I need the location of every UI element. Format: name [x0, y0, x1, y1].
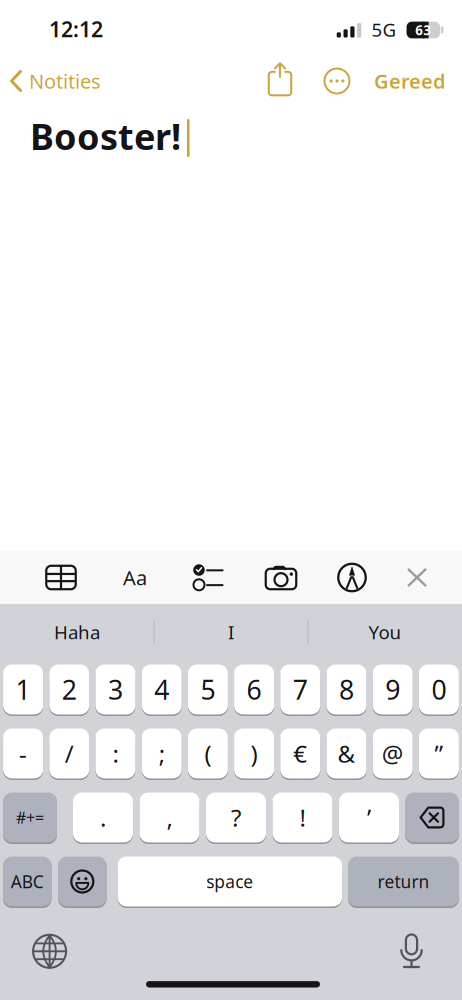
button[interactable]: 2 [49, 663, 89, 715]
staticText: : [112, 738, 118, 769]
staticText: 9 [385, 672, 400, 707]
button[interactable]: @ [373, 727, 413, 779]
button[interactable]: ) [234, 727, 274, 779]
staticText: / [65, 738, 74, 769]
button[interactable]: ? [206, 791, 266, 843]
staticText: & [337, 738, 355, 769]
staticText: ’ [367, 802, 371, 833]
button[interactable]: Next keyboard [22, 923, 78, 979]
staticText: ) [251, 738, 258, 769]
button[interactable]: More [317, 59, 357, 103]
button[interactable]: € [280, 727, 320, 779]
button[interactable]: ; [142, 727, 182, 779]
button[interactable]: Checklist [183, 551, 233, 604]
button[interactable]: ABC [3, 855, 52, 907]
button[interactable]: 1 [3, 663, 43, 715]
button[interactable]: Notities [10, 59, 180, 103]
button[interactable]: Dismiss keyboard [395, 551, 439, 604]
button[interactable]: . [73, 791, 133, 843]
staticText: 1 [16, 672, 31, 707]
button[interactable]: 6 [234, 663, 274, 715]
staticText: ; [159, 738, 165, 769]
button[interactable]: - [3, 727, 43, 779]
staticText: 4 [154, 672, 169, 707]
button[interactable]: ” [419, 727, 459, 779]
staticText: . [100, 802, 106, 833]
staticText: ABC [11, 870, 44, 893]
button[interactable]: 0 [419, 663, 459, 715]
staticText: , [166, 802, 172, 833]
staticText: 8 [339, 672, 354, 707]
staticText: 12:12 [49, 15, 103, 43]
button[interactable]: Formatting [110, 551, 160, 604]
button[interactable]: & [326, 727, 366, 779]
button[interactable]: I [156, 609, 306, 655]
button[interactable]: 8 [326, 663, 366, 715]
staticText: @ [382, 738, 404, 769]
staticText: Booster! [30, 112, 181, 160]
staticText: 5 [200, 672, 215, 707]
button[interactable]: 5 [188, 663, 228, 715]
staticText: Notities [29, 68, 101, 94]
button[interactable]: / [49, 727, 89, 779]
staticText: ? [231, 802, 241, 833]
staticText: 3 [108, 672, 123, 707]
button[interactable]: ’ [339, 791, 399, 843]
button[interactable]: Share [260, 57, 300, 101]
staticText: ! [299, 802, 305, 833]
button[interactable]: Dictate [383, 921, 439, 977]
button[interactable]: #+= [3, 791, 57, 843]
staticText: Haha [54, 620, 100, 644]
button[interactable]: Delete [405, 791, 459, 843]
button[interactable]: Markup [327, 551, 377, 604]
button[interactable]: 3 [95, 663, 135, 715]
staticText: € [293, 738, 307, 769]
button[interactable]: You [310, 609, 460, 655]
button[interactable]: , [139, 791, 199, 843]
button[interactable]: Emoji [58, 855, 106, 907]
staticText: space [206, 870, 253, 893]
button[interactable]: 9 [373, 663, 413, 715]
button[interactable]: Haha [2, 609, 152, 655]
button[interactable]: space [118, 855, 342, 907]
button[interactable]: : [95, 727, 135, 779]
staticText: Gereed [374, 68, 446, 94]
button[interactable]: ( [188, 727, 228, 779]
button[interactable]: Gereed [316, 59, 446, 103]
staticText: 63 [415, 21, 431, 39]
staticText: return [377, 870, 429, 893]
button[interactable]: Insert table [36, 551, 86, 604]
staticText: - [19, 738, 27, 769]
staticText: 6 [247, 672, 262, 707]
button[interactable]: Insert photo [256, 551, 306, 604]
staticText: 2 [62, 672, 77, 707]
staticText: I [228, 620, 234, 644]
button[interactable]: return [348, 855, 459, 907]
staticText: You [368, 620, 401, 644]
staticText: Aa [123, 564, 147, 591]
staticText: 0 [431, 672, 446, 707]
staticText: ” [434, 738, 443, 769]
button[interactable]: 7 [280, 663, 320, 715]
staticText: 7 [293, 672, 308, 707]
staticText: #+= [16, 807, 44, 828]
button[interactable]: ! [272, 791, 332, 843]
staticText: ( [204, 738, 211, 769]
staticText: 5G [371, 17, 396, 42]
button[interactable]: 4 [142, 663, 182, 715]
